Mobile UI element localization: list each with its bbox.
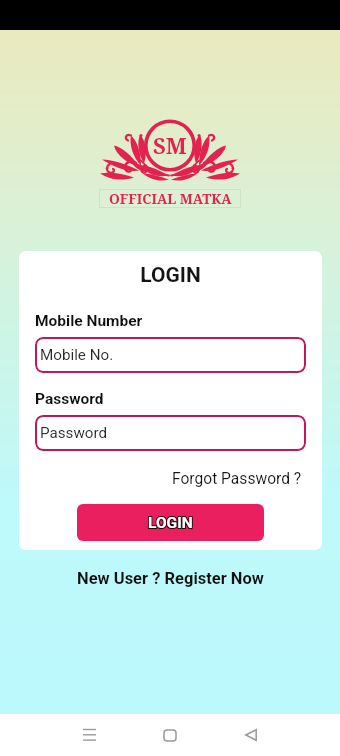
staticText: Forgot Password ?	[172, 470, 302, 488]
staticText: LOGIN	[147, 515, 192, 533]
staticText: LOGIN	[149, 515, 194, 533]
staticText: New User ? Register Now	[77, 569, 264, 588]
button[interactable]: Home	[148, 727, 192, 743]
staticText: LOGIN	[148, 514, 193, 532]
staticText: Password	[35, 390, 104, 408]
staticText: Password	[40, 424, 108, 442]
button[interactable]: LOGIN	[77, 504, 264, 541]
staticText: Mobile No.	[40, 346, 114, 364]
button[interactable]: Back	[229, 727, 273, 743]
staticText: OFFICIAL MATKA	[109, 189, 232, 208]
staticText: LOGIN	[149, 513, 194, 531]
staticText: Mobile Number	[35, 312, 143, 330]
button[interactable]: New User ? Register Now	[71, 567, 270, 590]
button[interactable]: Forgot Password ?	[170, 467, 306, 491]
button[interactable]: Password	[35, 415, 306, 451]
staticText: SM	[153, 130, 187, 160]
staticText: LOGIN	[147, 513, 192, 531]
button[interactable]: Mobile No.	[35, 337, 306, 373]
button[interactable]: Recent apps	[67, 727, 111, 743]
staticText: LOGIN	[35, 263, 306, 288]
